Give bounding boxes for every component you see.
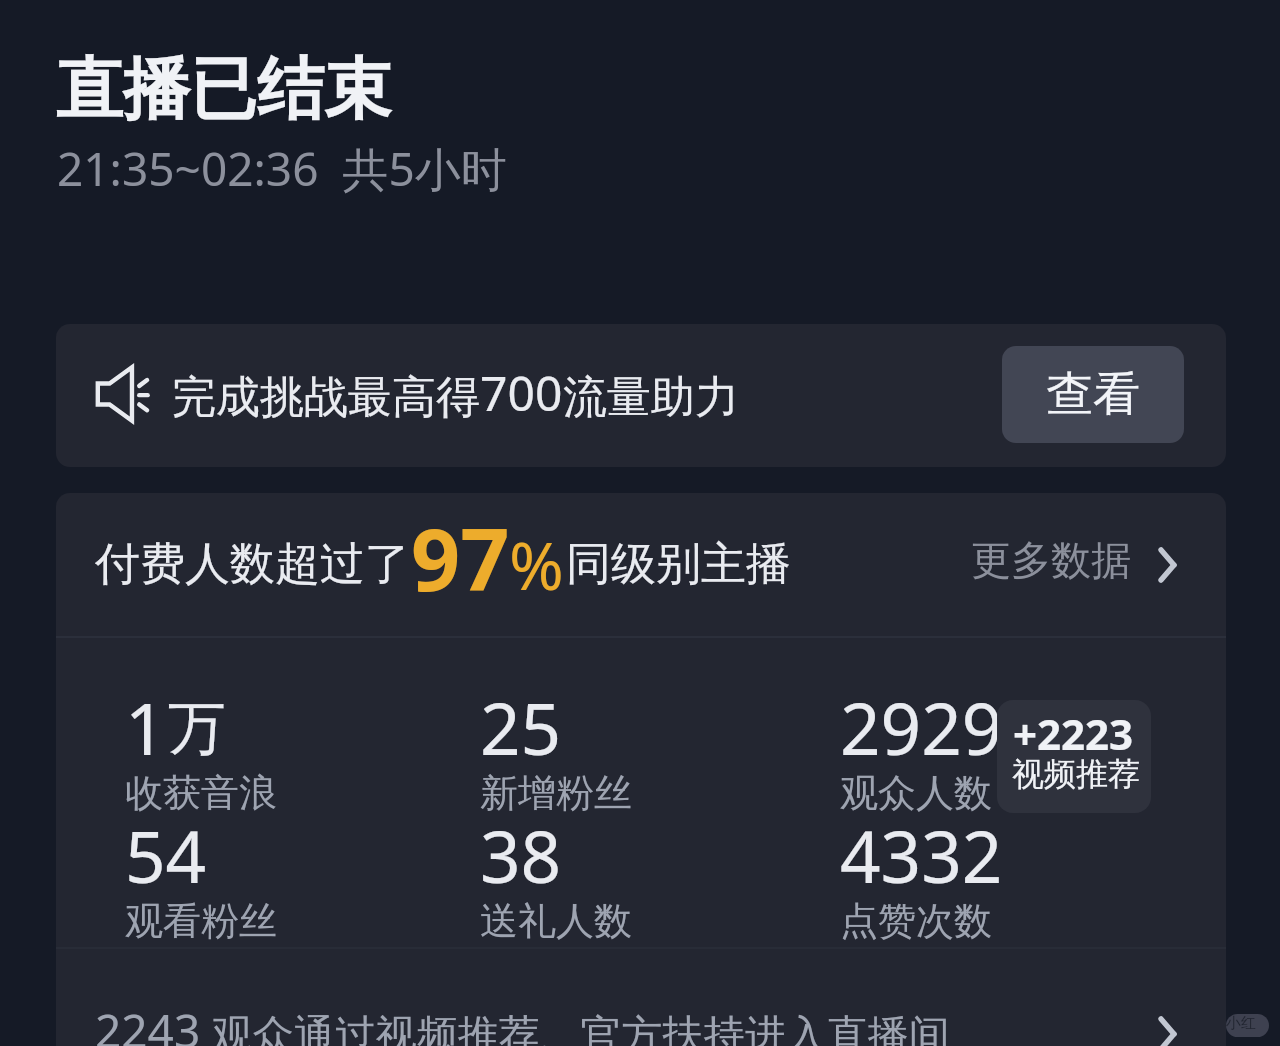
staticText: 新增粉丝: [480, 769, 632, 817]
staticText: 25: [480, 679, 562, 776]
staticText: 观众通过视频推荐、官方扶持进入直播间: [201, 1005, 950, 1046]
button[interactable]: 付费人数超过了: [56, 493, 1226, 636]
staticText: 收获音浪: [125, 769, 277, 817]
button[interactable]: Announcement: [56, 324, 1226, 467]
staticText: 同级别主播: [566, 536, 791, 593]
staticText: 付费人数超过了: [95, 536, 410, 593]
staticText: 完成挑战最高得: [172, 370, 480, 425]
staticText: 700: [480, 360, 563, 425]
staticText: 查看: [1046, 365, 1140, 424]
staticText: 送礼人数: [480, 897, 632, 945]
button[interactable]: +2223: [997, 700, 1151, 813]
staticText: 54: [125, 807, 207, 904]
button[interactable]: 2243: [56, 949, 1226, 1046]
staticText: 直播已结束: [56, 47, 391, 131]
staticText: %: [509, 519, 564, 609]
staticText: +2223: [1013, 705, 1134, 762]
button[interactable]: 查看: [1002, 346, 1184, 443]
other: Details: [1158, 1016, 1177, 1046]
staticText: 38: [480, 807, 562, 904]
staticText: 视频推荐: [1012, 754, 1140, 794]
other: Announcement: [95, 365, 151, 423]
staticText: 万: [168, 692, 226, 765]
other: More data: [1158, 547, 1177, 583]
staticText: 2243: [95, 999, 201, 1046]
staticText: 小红书: [1226, 1014, 1269, 1037]
staticText: 流量助力: [563, 370, 739, 425]
staticText: 4332: [840, 807, 1003, 904]
staticText: 更多数据: [971, 535, 1131, 585]
staticText: 21:35~02:36 共5小时: [57, 137, 507, 200]
staticText: 1: [125, 679, 166, 776]
staticText: 2929: [840, 679, 1003, 776]
staticText: 点赞次数: [840, 897, 992, 945]
staticText: 观看粉丝: [125, 897, 277, 945]
staticText: 观众人数: [840, 769, 992, 817]
staticText: 97: [411, 499, 510, 616]
